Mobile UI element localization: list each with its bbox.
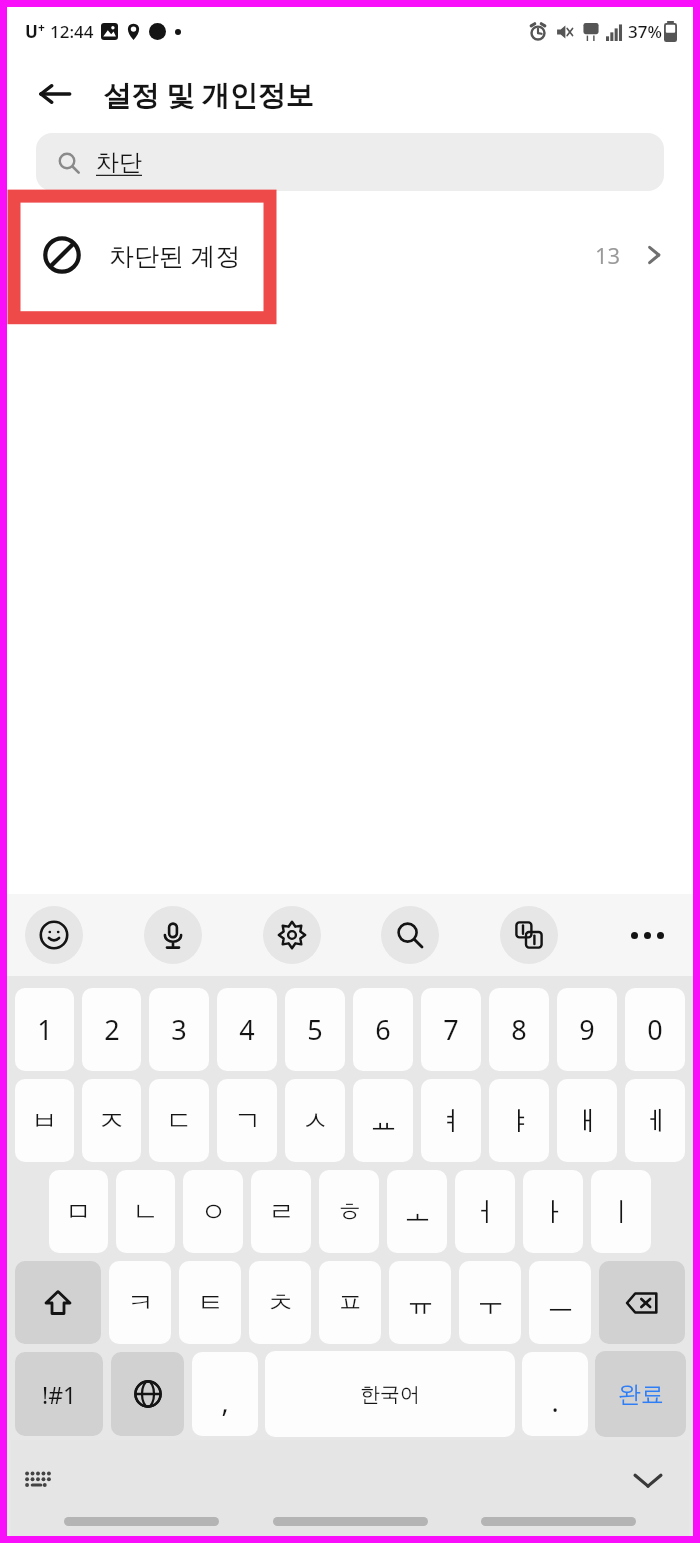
staticText: ㅂ	[31, 1104, 58, 1138]
button[interactable]: ㅗ	[387, 1170, 447, 1253]
staticText: ㅑ	[506, 1104, 533, 1138]
staticText: 7	[443, 1011, 459, 1048]
button[interactable]: ㄱ	[217, 1079, 277, 1162]
button[interactable]: .	[522, 1352, 588, 1436]
button[interactable]: 차단된 계정	[7, 191, 693, 319]
staticText: 3	[171, 1011, 187, 1048]
button[interactable]: ㅛ	[353, 1079, 413, 1162]
button[interactable]: ㅠ	[389, 1261, 451, 1344]
button[interactable]: ㅔ	[625, 1079, 685, 1162]
button[interactable]: ㅡ	[529, 1261, 591, 1344]
button[interactable]: 5	[285, 988, 345, 1071]
button[interactable]: ㅕ	[421, 1079, 481, 1162]
staticText: ,	[221, 1383, 229, 1420]
button[interactable]: Shift	[15, 1261, 101, 1344]
staticText: 4	[239, 1011, 255, 1048]
staticText: ㄹ	[268, 1195, 295, 1229]
button[interactable]: ㄴ	[116, 1170, 175, 1253]
staticText: ㄴ	[132, 1195, 159, 1229]
staticText: ㅎ	[336, 1195, 363, 1229]
staticText: 차단된 계정	[109, 238, 241, 272]
button[interactable]: ,	[192, 1352, 258, 1436]
other: Keyboard layout	[25, 1467, 51, 1493]
staticText: +	[38, 19, 45, 35]
button[interactable]: 9	[557, 988, 617, 1071]
button[interactable]: ㅎ	[319, 1170, 379, 1253]
button[interactable]: ㅍ	[319, 1261, 381, 1344]
button[interactable]: Hide keyboard	[625, 1457, 671, 1503]
staticText: ㅊ	[267, 1286, 294, 1320]
button[interactable]: Backspace	[599, 1261, 685, 1344]
staticText: ㄱ	[234, 1104, 261, 1138]
staticText: 37%	[628, 20, 662, 43]
staticText: ㅏ	[540, 1195, 567, 1229]
staticText: !#1	[42, 1379, 77, 1410]
staticText: 차단	[96, 148, 142, 177]
staticText: 9	[579, 1011, 595, 1048]
button[interactable]: ㅜ	[459, 1261, 521, 1344]
staticText: 12:44	[50, 20, 94, 43]
button[interactable]: More options	[619, 907, 675, 963]
button[interactable]: Back	[29, 68, 81, 120]
button[interactable]: 1	[15, 988, 74, 1071]
button[interactable]: Voice input	[144, 906, 202, 964]
button[interactable]: Keyboard settings	[263, 906, 321, 964]
button[interactable]: 7	[421, 988, 481, 1071]
button[interactable]: Emoji	[25, 906, 83, 964]
button[interactable]: ㅓ	[455, 1170, 515, 1253]
button[interactable]: ㄹ	[251, 1170, 311, 1253]
button[interactable]: Search	[381, 906, 439, 964]
staticText: ㅗ	[404, 1195, 431, 1229]
staticText: 0	[647, 1011, 663, 1048]
button[interactable]: ㅅ	[285, 1079, 345, 1162]
staticText: 8	[511, 1011, 527, 1048]
button[interactable]: ㅏ	[523, 1170, 583, 1253]
button[interactable]: 0	[625, 988, 685, 1071]
staticText: ㄷ	[166, 1104, 193, 1138]
staticText: ㅈ	[98, 1104, 125, 1138]
staticText: 6	[375, 1011, 391, 1048]
staticText: ㅍ	[337, 1286, 364, 1320]
staticText: ㅓ	[472, 1195, 499, 1229]
staticText: ㅔ	[642, 1104, 669, 1138]
button[interactable]: Translate	[500, 906, 558, 964]
button[interactable]: ㄷ	[149, 1079, 209, 1162]
staticText: ㅠ	[407, 1286, 434, 1320]
staticText: 13	[595, 240, 621, 270]
button[interactable]: ㅑ	[489, 1079, 549, 1162]
staticText: .	[551, 1383, 559, 1420]
button[interactable]: ㅋ	[109, 1261, 171, 1344]
button[interactable]: ㅁ	[49, 1170, 108, 1253]
button[interactable]: ㅊ	[249, 1261, 311, 1344]
staticText: ㅜ	[477, 1286, 504, 1320]
staticText: ㅇ	[200, 1195, 227, 1229]
button[interactable]: !#1	[15, 1352, 103, 1436]
staticText: ㅅ	[302, 1104, 329, 1138]
staticText: 한국어	[360, 1382, 420, 1407]
button[interactable]: 완료	[595, 1351, 686, 1437]
staticText: ㅋ	[127, 1286, 154, 1320]
button[interactable]: 한국어	[265, 1351, 515, 1437]
button[interactable]: 차단	[36, 133, 664, 191]
button[interactable]: ㅂ	[15, 1079, 74, 1162]
staticText: ㅣ	[608, 1195, 635, 1229]
staticText: 1	[37, 1011, 53, 1048]
button[interactable]: 4	[217, 988, 277, 1071]
staticText: 설정 및 개인정보	[103, 75, 314, 113]
button[interactable]: 8	[489, 988, 549, 1071]
button[interactable]: 3	[149, 988, 209, 1071]
button[interactable]: ㅈ	[82, 1079, 141, 1162]
staticText: 5	[307, 1011, 323, 1048]
staticText: 완료	[618, 1380, 664, 1409]
button[interactable]: 2	[82, 988, 141, 1071]
staticText: ㅕ	[438, 1104, 465, 1138]
staticText: ㅛ	[370, 1104, 397, 1138]
button[interactable]: 6	[353, 988, 413, 1071]
button[interactable]: ㅌ	[179, 1261, 241, 1344]
staticText: ㅐ	[574, 1104, 601, 1138]
button[interactable]: ㅐ	[557, 1079, 617, 1162]
button[interactable]: ㅣ	[591, 1170, 651, 1253]
button[interactable]: Change language	[111, 1352, 184, 1436]
staticText: ㅌ	[197, 1286, 224, 1320]
button[interactable]: ㅇ	[183, 1170, 243, 1253]
